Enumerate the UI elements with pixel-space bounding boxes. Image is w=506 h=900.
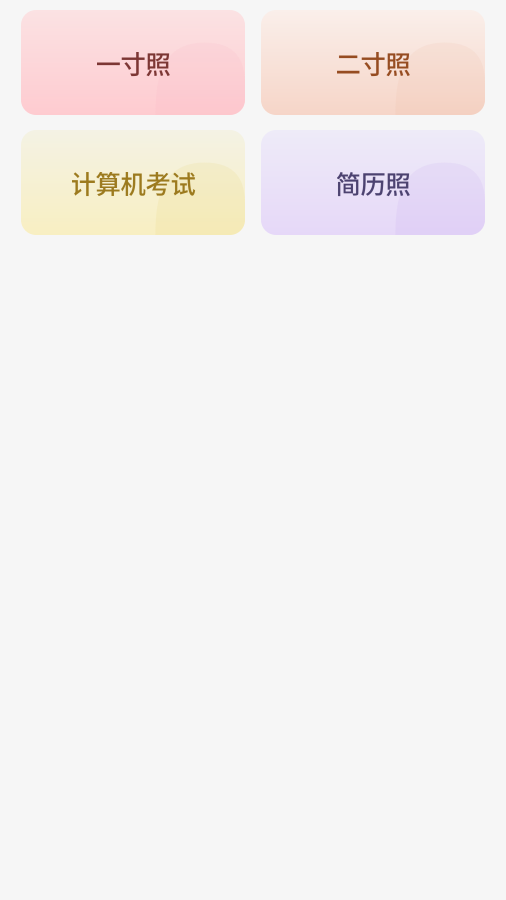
staticText: 计算机考试 <box>70 164 195 201</box>
staticText: 简历照 <box>335 164 410 201</box>
button[interactable]: 计算机考试 <box>21 130 245 235</box>
button[interactable]: 一寸照 <box>21 10 245 115</box>
staticText: 一寸照 <box>95 44 170 81</box>
staticText: 二寸照 <box>335 44 410 81</box>
button[interactable]: 二寸照 <box>261 10 485 115</box>
button[interactable]: 简历照 <box>261 130 485 235</box>
